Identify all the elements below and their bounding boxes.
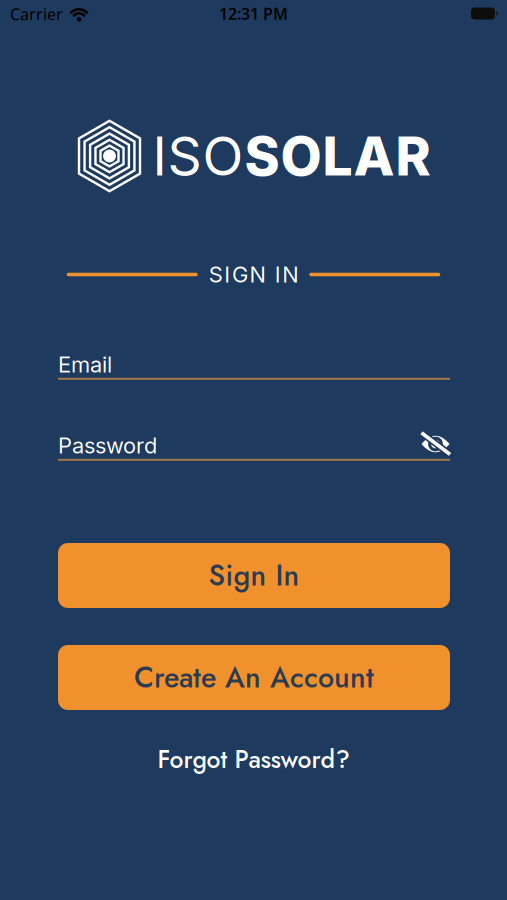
button[interactable]: Password <box>58 432 450 461</box>
staticText: Email <box>58 351 112 378</box>
staticText: Create An Account <box>134 657 374 698</box>
button[interactable]: Email <box>58 351 450 380</box>
button[interactable]: Forgot Password? <box>157 742 349 777</box>
staticText: Password <box>58 432 157 459</box>
button[interactable]: Create An Account <box>58 645 450 710</box>
staticText: Carrier <box>10 3 63 25</box>
staticText: SIGN IN <box>209 261 298 288</box>
button[interactable]: Sign In <box>58 543 450 608</box>
staticText: 12:31 PM <box>219 3 288 24</box>
staticText: ISOSOLAR <box>152 124 430 187</box>
staticText: Sign In <box>208 555 299 596</box>
button[interactable]: Show password <box>420 431 451 456</box>
staticText: Forgot Password? <box>157 742 349 777</box>
